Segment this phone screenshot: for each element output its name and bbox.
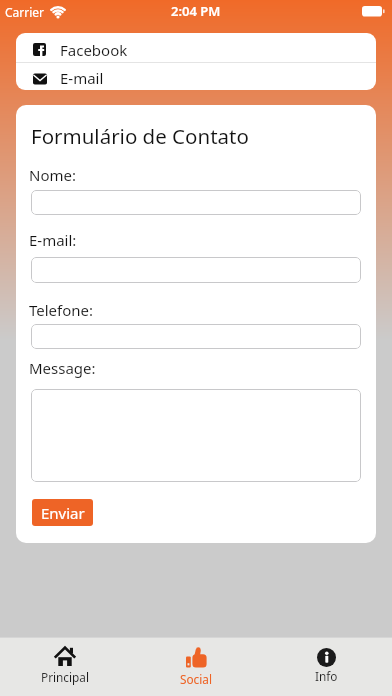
button[interactable]: Principal [0,638,130,696]
staticText: Formulário de Contato [31,122,249,150]
staticText: Carrier [5,4,45,20]
button[interactable] [31,324,361,349]
staticText: E-mail [60,68,104,88]
staticText: Enviar [41,503,85,523]
staticText: 2:04 PM [171,2,221,20]
button[interactable]: Social [130,638,261,696]
button[interactable] [31,257,361,283]
staticText: Message: [29,358,96,378]
button[interactable]: Facebook [16,35,376,64]
staticText: Facebook [60,40,128,60]
staticText: Telefone: [29,300,94,320]
button[interactable]: Enviar [32,499,93,526]
button[interactable]: Info [261,638,392,696]
staticText: Social [180,671,212,687]
button[interactable] [31,190,361,215]
staticText: Nome: [29,165,76,185]
button[interactable]: E-mail [16,65,376,90]
staticText: Info [315,668,338,684]
button[interactable] [31,389,361,482]
staticText: E-mail: [29,230,77,250]
staticText: Principal [41,669,89,685]
